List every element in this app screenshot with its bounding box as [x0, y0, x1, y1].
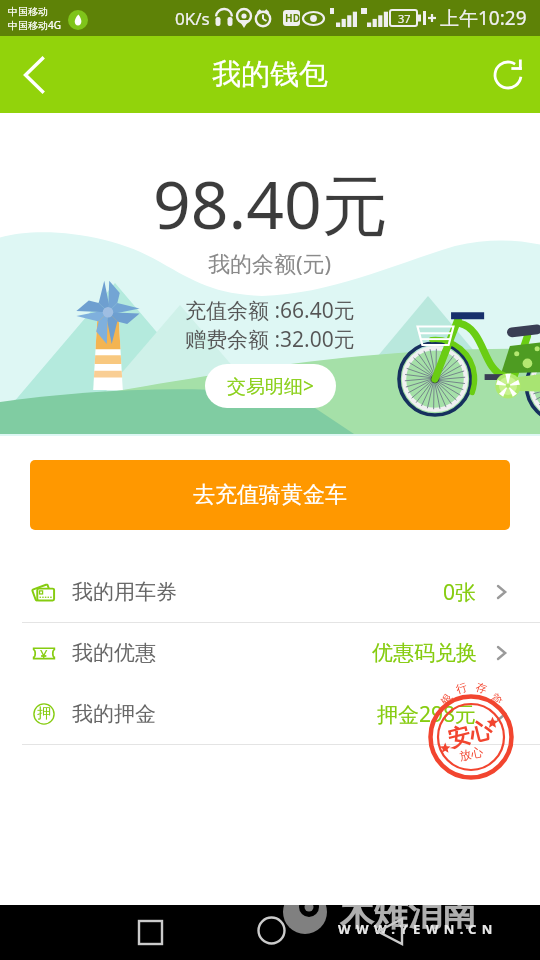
staticText: 中国移动4G — [8, 18, 61, 32]
staticText: 押金298元 — [377, 700, 477, 729]
button[interactable]: 去充值骑黄金车 — [30, 460, 510, 530]
staticText: 存 — [474, 680, 489, 696]
staticText: HD — [285, 11, 300, 25]
button[interactable]: Back — [0, 36, 68, 113]
staticText: WWW.YEWN.CN — [338, 920, 498, 938]
staticText: 银 — [438, 690, 455, 707]
button[interactable]: ¥ — [0, 623, 540, 683]
staticText: 安心 — [445, 716, 495, 754]
staticText: 木雉消南 — [340, 905, 476, 935]
staticText: 37 — [398, 11, 411, 26]
button[interactable]: Home — [241, 905, 301, 958]
button[interactable]: 押 — [0, 684, 540, 744]
staticText: 去充值骑黄金车 — [193, 481, 347, 509]
staticText: 优惠码兑换 — [372, 640, 477, 666]
staticText: 0K/s — [175, 7, 210, 30]
staticText: 上午10:29 — [440, 5, 527, 31]
button[interactable]: Recents — [120, 905, 180, 960]
staticText: 充值余额 :66.40元 — [185, 296, 355, 325]
staticText: 我的用车券 — [72, 579, 177, 605]
button[interactable]: Refresh — [476, 43, 540, 107]
staticText: 交易明细> — [227, 373, 314, 399]
staticText: 我的优惠 — [72, 640, 156, 666]
staticText: 赠费余额 :32.00元 — [185, 325, 355, 354]
staticText: 我的钱包 — [212, 56, 328, 93]
staticText: 我的余额(元) — [208, 248, 332, 278]
staticText: 放心 — [458, 744, 484, 763]
staticText: 我的押金 — [72, 701, 156, 727]
button[interactable]: 我的用车券 — [0, 562, 540, 622]
staticText: 中国移动 — [8, 5, 48, 18]
staticText: ¥ — [40, 645, 48, 663]
staticText: 0张 — [443, 578, 477, 607]
staticText: 管 — [488, 690, 505, 707]
staticText: 98.40元 — [153, 158, 388, 248]
button[interactable]: 交易明细> — [205, 364, 336, 408]
button[interactable]: Back — [360, 905, 420, 959]
staticText: 押 — [37, 705, 51, 723]
staticText: 行 — [454, 680, 469, 696]
